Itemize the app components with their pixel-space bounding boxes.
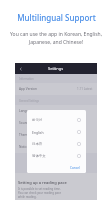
button[interactable]: Sound (15, 117, 97, 129)
staticText: 日本語 (32, 142, 43, 146)
button[interactable]: Language (15, 105, 97, 117)
staticText: Information (19, 77, 34, 81)
button[interactable]: App Version (15, 83, 97, 95)
staticText: 1.11 Latest (77, 87, 93, 91)
staticText: Setting up a reading pace (18, 180, 67, 185)
button[interactable]: 한국어 (27, 114, 86, 126)
button[interactable]: English (27, 126, 86, 138)
staticText: Notice (19, 145, 29, 149)
button[interactable]: Notice (15, 141, 97, 153)
staticText: 한국어 (32, 118, 43, 122)
staticText: Settings (48, 66, 64, 71)
staticText: 简体中文 (32, 154, 46, 158)
button[interactable]: 日本語 (27, 138, 86, 150)
staticText: Sound (19, 121, 29, 125)
button[interactable]: Theme (15, 129, 97, 141)
staticText: Cancel (70, 166, 80, 170)
staticText: It is possible to set reading time. You … (18, 187, 61, 199)
staticText: You can use the app in Korean, English, … (10, 31, 102, 45)
staticText: English (32, 130, 44, 135)
staticText: App Version (19, 87, 37, 91)
staticText: Multilingual Support (17, 12, 96, 23)
button[interactable]: 简体中文 (27, 150, 86, 162)
staticText: Language (19, 109, 34, 113)
staticText: General Settings (19, 99, 40, 103)
staticText: Theme (19, 133, 30, 137)
